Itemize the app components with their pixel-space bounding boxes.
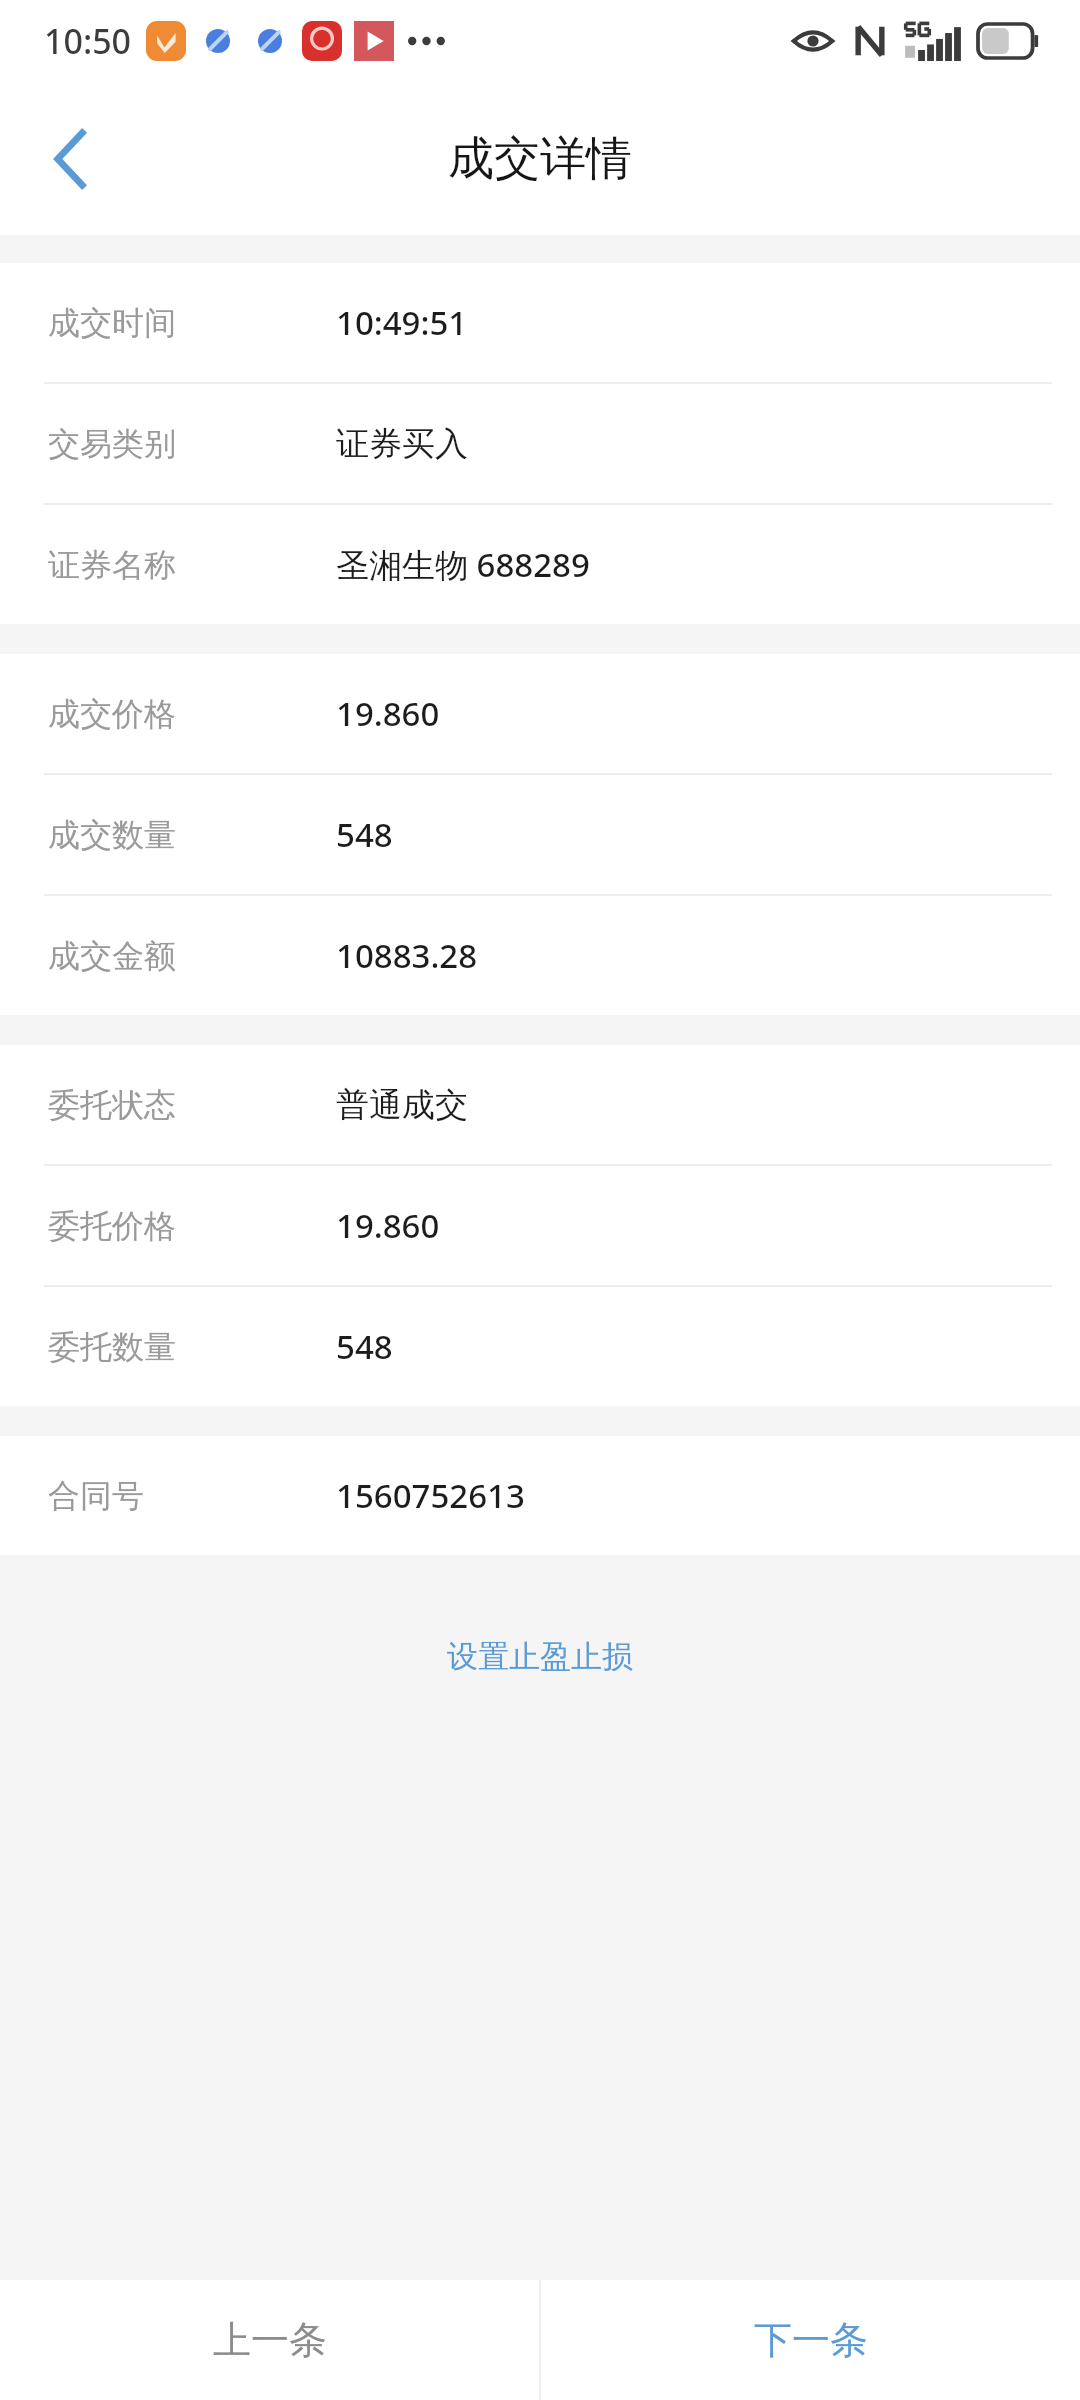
staticText: 成交详情: [448, 130, 632, 188]
button[interactable]: 证券名称: [0, 505, 1080, 624]
button[interactable]: Back: [0, 82, 140, 235]
staticText: 10:49:51: [336, 300, 468, 345]
staticText: 交易类别: [48, 424, 176, 464]
staticText: 普通成交: [336, 1084, 468, 1126]
button[interactable]: 委托价格: [0, 1166, 1080, 1285]
staticText: 委托价格: [48, 1206, 176, 1246]
staticText: 证券名称: [48, 545, 176, 585]
staticText: 圣湘生物 688289: [336, 542, 590, 587]
staticText: 10883.28: [336, 933, 478, 978]
button[interactable]: 交易类别: [0, 384, 1080, 503]
button[interactable]: 合同号: [0, 1436, 1080, 1555]
staticText: 成交数量: [48, 815, 176, 855]
button[interactable]: 成交金额: [0, 896, 1080, 1015]
staticText: 成交时间: [48, 303, 176, 343]
button[interactable]: 设置止盈止损: [0, 1601, 1080, 1711]
button[interactable]: 成交时间: [0, 263, 1080, 382]
staticText: 设置止盈止损: [447, 1637, 633, 1676]
staticText: 上一条: [213, 2316, 327, 2364]
button[interactable]: 成交价格: [0, 654, 1080, 773]
button[interactable]: 委托数量: [0, 1287, 1080, 1406]
staticText: 下一条: [754, 2316, 868, 2364]
staticText: 19.860: [336, 691, 440, 736]
staticText: 成交金额: [48, 936, 176, 976]
staticText: 548: [336, 812, 393, 857]
staticText: 10:50: [44, 18, 132, 64]
staticText: 合同号: [48, 1476, 144, 1516]
staticText: 成交价格: [48, 694, 176, 734]
button[interactable]: 委托状态: [0, 1045, 1080, 1164]
button[interactable]: 下一条: [541, 2280, 1080, 2400]
staticText: 委托状态: [48, 1085, 176, 1125]
button[interactable]: 上一条: [0, 2280, 539, 2400]
button[interactable]: 成交数量: [0, 775, 1080, 894]
staticText: 委托数量: [48, 1327, 176, 1367]
staticText: 548: [336, 1324, 393, 1369]
staticText: 1560752613: [336, 1473, 525, 1518]
staticText: 19.860: [336, 1203, 440, 1248]
staticText: 证券买入: [336, 423, 468, 465]
